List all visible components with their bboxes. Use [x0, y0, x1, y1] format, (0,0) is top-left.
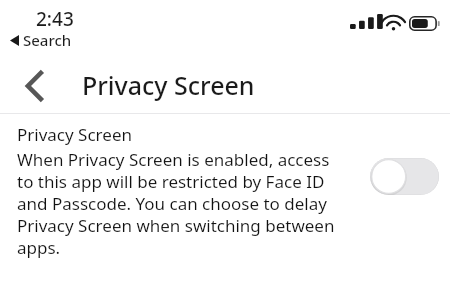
staticText: 2:43	[36, 6, 74, 30]
button[interactable]: Privacy Screen toggle, off	[366, 154, 443, 199]
staticText: Search	[23, 30, 72, 50]
staticText: Privacy Screen	[17, 123, 132, 146]
button[interactable]: Back	[12, 64, 56, 108]
staticText: Privacy Screen	[82, 68, 255, 102]
staticText: When Privacy Screen is enabled, access t…	[17, 148, 347, 259]
button[interactable]: Search	[9, 29, 73, 51]
